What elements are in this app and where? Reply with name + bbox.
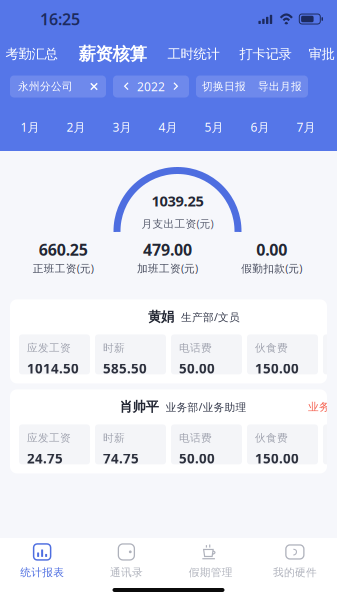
staticText: 电话费 — [179, 431, 212, 444]
staticText: 工时统计 — [167, 46, 219, 62]
staticText: 150.00 — [255, 359, 299, 377]
staticText: 我的硬件 — [273, 566, 317, 579]
staticText: 业务部/业务助理 — [165, 400, 246, 414]
staticText: 6月 — [250, 119, 269, 135]
button[interactable]: 4月 — [145, 110, 191, 144]
button[interactable]: 假期管理 — [168, 540, 253, 582]
staticText: 肖帅平 — [119, 399, 158, 415]
button[interactable]: 1月 — [7, 110, 53, 144]
staticText: 审批 — [308, 46, 334, 62]
staticText: 通讯录 — [110, 566, 143, 579]
staticText: 1014.50 — [27, 359, 79, 377]
staticText: 0.00 — [256, 239, 287, 260]
button[interactable]: 肖帅平 — [10, 389, 327, 473]
staticText: 黄娟 — [148, 309, 174, 325]
staticText: 7月 — [296, 119, 315, 135]
staticText: 切换日报 — [202, 80, 246, 93]
button[interactable]: 2月 — [53, 110, 99, 144]
staticText: 伙食费 — [255, 431, 288, 444]
staticText: 150.00 — [255, 449, 299, 467]
button[interactable]: 通讯录 — [84, 540, 168, 582]
button[interactable]: 6月 — [237, 110, 283, 144]
button[interactable]: 工时统计 — [157, 38, 229, 70]
button[interactable]: 永州分公司 — [10, 75, 106, 97]
staticText: 4月 — [158, 119, 177, 135]
button[interactable]: 考勤汇总 — [0, 38, 67, 70]
staticText: 业务助理 — [308, 400, 337, 413]
staticText: 16:25 — [40, 8, 80, 30]
staticText: 2022 — [137, 78, 165, 94]
button[interactable]: Previous year — [116, 75, 137, 97]
button[interactable]: 黄娟 — [10, 299, 327, 383]
staticText: 660.25 — [39, 239, 88, 260]
button[interactable]: 7月 — [283, 110, 329, 144]
button[interactable]: 打卡记录 — [229, 38, 301, 70]
staticText: 1039.25 — [151, 191, 203, 210]
staticText: 时薪 — [103, 431, 125, 444]
staticText: 应发工资 — [27, 341, 71, 354]
button[interactable]: 薪资核算 — [67, 38, 157, 70]
staticText: 50.00 — [179, 359, 215, 377]
staticText: 2月 — [66, 119, 85, 135]
staticText: 薪资核算 — [78, 43, 146, 65]
staticText: 导出月报 — [258, 80, 302, 93]
button[interactable]: 导出月报 — [252, 75, 308, 97]
button[interactable]: 统计报表 — [0, 540, 84, 582]
staticText: 伙食费 — [255, 341, 288, 354]
staticText: 1月 — [20, 119, 39, 135]
button[interactable]: 3月 — [99, 110, 145, 144]
staticText: 加班工资(元) — [137, 261, 198, 275]
button[interactable]: 审批 — [301, 38, 337, 70]
staticText: 考勤汇总 — [5, 46, 57, 62]
staticText: 永州分公司 — [18, 80, 73, 93]
staticText: 电话费 — [179, 341, 212, 354]
staticText: 假勤扣款(元) — [241, 261, 302, 275]
staticText: 正班工资(元) — [33, 261, 94, 275]
staticText: 24.75 — [27, 449, 63, 467]
staticText: 5月 — [204, 119, 223, 135]
staticText: 585.50 — [103, 359, 147, 377]
staticText: 74.75 — [103, 449, 139, 467]
staticText: 50.00 — [179, 449, 215, 467]
staticText: 打卡记录 — [239, 46, 291, 62]
button[interactable]: 我的硬件 — [253, 540, 337, 582]
staticText: 统计报表 — [20, 566, 64, 579]
staticText: 假期管理 — [189, 566, 233, 579]
staticText: 时薪 — [103, 341, 125, 354]
staticText: 月支出工资(元) — [141, 216, 213, 231]
staticText: 479.00 — [143, 239, 192, 260]
button[interactable]: Next year — [165, 75, 186, 97]
staticText: 应发工资 — [27, 431, 71, 444]
button[interactable]: 切换日报 — [196, 75, 252, 97]
staticText: 3月 — [112, 119, 131, 135]
button[interactable]: 5月 — [191, 110, 237, 144]
staticText: 生产部/文员 — [181, 310, 240, 324]
